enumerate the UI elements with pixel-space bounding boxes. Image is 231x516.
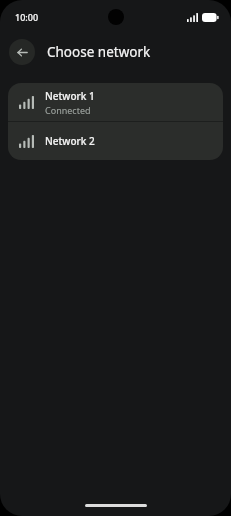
- staticText: Network 2: [45, 134, 95, 148]
- staticText: Network 1: [45, 89, 95, 103]
- button[interactable]: Network 1: [8, 83, 223, 121]
- staticText: Connected: [45, 104, 91, 116]
- staticText: 10:00: [15, 11, 39, 23]
- button[interactable]: Back: [9, 39, 35, 65]
- staticText: Choose network: [47, 43, 151, 61]
- button[interactable]: Network 2: [8, 122, 223, 160]
